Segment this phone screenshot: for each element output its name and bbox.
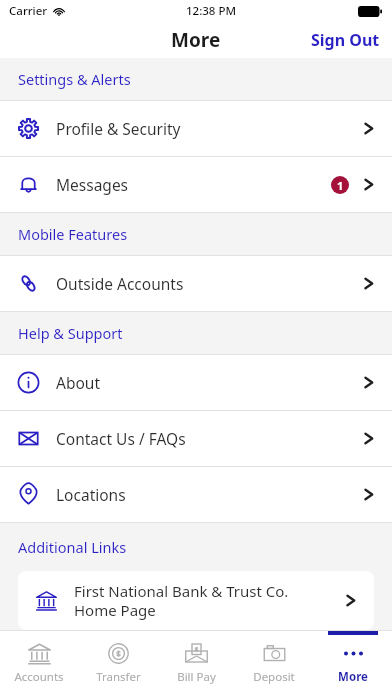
staticText: Accounts	[14, 669, 64, 685]
staticText: Messages	[56, 174, 331, 195]
staticText: Outside Accounts	[56, 273, 360, 294]
staticText: Bill Pay	[177, 669, 216, 685]
staticText: More	[171, 27, 221, 53]
button[interactable]: More	[314, 631, 392, 686]
staticText: Transfer	[96, 669, 141, 685]
button[interactable]: Bill Pay	[157, 631, 235, 686]
button[interactable]: Sign Out	[299, 24, 392, 56]
button[interactable]: Profile & Security	[0, 101, 392, 156]
button[interactable]: Locations	[0, 467, 392, 522]
staticText: More	[338, 669, 368, 685]
staticText: Settings & Alerts	[18, 69, 131, 89]
staticText: Mobile Features	[18, 224, 128, 244]
staticText: First National Bank & Trust Co. Home Pag…	[74, 581, 332, 620]
staticText: Deposit	[253, 669, 295, 685]
staticText: 12:38 PM	[186, 3, 237, 19]
staticText: 1	[337, 178, 344, 193]
staticText: Contact Us / FAQs	[56, 428, 360, 449]
button[interactable]: Contact Us / FAQs	[0, 411, 392, 466]
button[interactable]: Deposit	[235, 631, 313, 686]
staticText: About	[56, 372, 360, 393]
staticText: Sign Out	[311, 29, 380, 51]
button[interactable]: Messages	[0, 157, 392, 212]
button[interactable]: Accounts	[0, 631, 78, 686]
button[interactable]: First National Bank & Trust Co. Home Pag…	[18, 571, 374, 630]
staticText: Help & Support	[18, 323, 123, 343]
staticText: Locations	[56, 484, 360, 505]
staticText: Carrier	[9, 3, 48, 19]
button[interactable]: Transfer	[79, 631, 157, 686]
staticText: Additional Links	[18, 537, 127, 557]
button[interactable]: Outside Accounts	[0, 256, 392, 311]
staticText: Profile & Security	[56, 118, 360, 139]
button[interactable]: About	[0, 355, 392, 410]
